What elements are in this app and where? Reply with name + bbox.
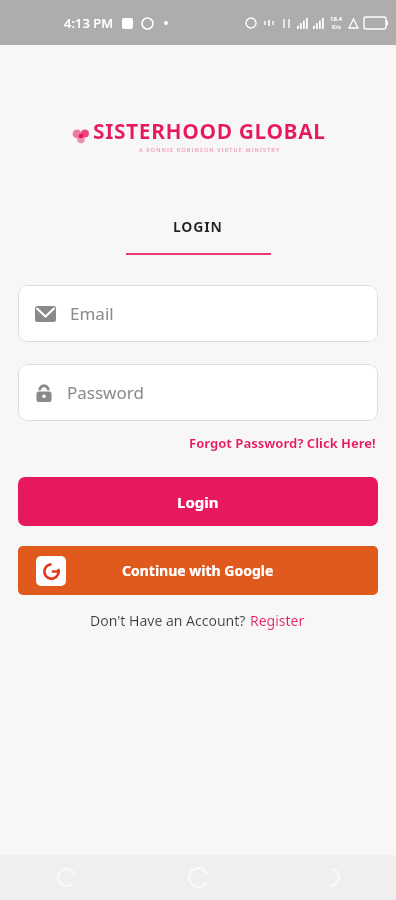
- staticText: K/s: [332, 23, 341, 31]
- staticText: Register: [250, 611, 305, 630]
- staticText: 18.4: [330, 15, 342, 23]
- staticText: 4:13 PM: [64, 14, 114, 32]
- staticText: Forgot Password? Click Here!: [189, 434, 376, 452]
- button[interactable]: Email: [18, 285, 378, 342]
- button[interactable]: Register: [249, 609, 306, 632]
- staticText: Login: [177, 492, 219, 512]
- staticText: LOGIN: [173, 217, 223, 236]
- staticText: Password: [67, 381, 144, 404]
- staticText: Email: [70, 302, 114, 325]
- staticText: A RONNIE ROBINSON VIRTUE MINISTRY: [139, 146, 281, 153]
- staticText: SISTERHOOD GLOBAL: [93, 117, 326, 146]
- button[interactable]: Password: [18, 364, 378, 421]
- button[interactable]: LOGIN: [149, 213, 247, 240]
- button[interactable]: Continue with Google: [18, 546, 378, 595]
- staticText: Continue with Google: [122, 561, 274, 580]
- staticText: Don't Have an Account?: [90, 611, 249, 630]
- button[interactable]: Login: [18, 477, 378, 526]
- button[interactable]: Forgot Password? Click Here!: [187, 431, 378, 455]
